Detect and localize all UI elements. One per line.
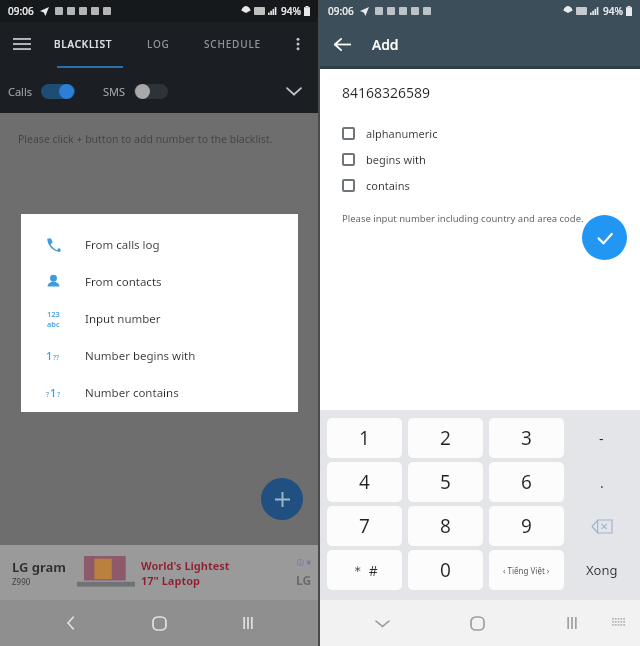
button[interactable]: Keyboard settings bbox=[604, 608, 634, 638]
button[interactable]: Recents bbox=[554, 605, 590, 641]
button[interactable]: 8 bbox=[408, 506, 483, 546]
button[interactable] bbox=[570, 506, 633, 546]
button[interactable]: 6 bbox=[489, 462, 564, 502]
staticText: alphanumeric bbox=[366, 126, 438, 141]
button[interactable]: Expand bbox=[278, 75, 310, 107]
staticText: World's Lightest bbox=[141, 558, 230, 573]
staticText: - bbox=[599, 429, 604, 448]
staticText: ‹ Tiếng Việt › bbox=[503, 565, 550, 576]
staticText: 3 bbox=[521, 425, 532, 451]
button[interactable]: 1 bbox=[21, 337, 298, 374]
staticText: Number begins with bbox=[85, 348, 196, 364]
button[interactable]: Home bbox=[459, 605, 495, 641]
button[interactable]: Recents bbox=[230, 605, 266, 641]
button[interactable]: 123 bbox=[21, 300, 298, 337]
staticText: ? bbox=[57, 390, 61, 400]
staticText: LOG bbox=[147, 37, 170, 51]
staticText: 0 bbox=[440, 557, 451, 583]
button[interactable]: 0 bbox=[408, 550, 483, 590]
button[interactable]: Hide keyboard bbox=[364, 605, 400, 641]
button[interactable]: Confirm bbox=[582, 215, 627, 260]
staticText: Xong bbox=[586, 561, 618, 579]
staticText: abc bbox=[47, 319, 60, 329]
button[interactable] bbox=[134, 84, 168, 99]
button[interactable]: 9 bbox=[489, 506, 564, 546]
button[interactable]: More options bbox=[278, 24, 318, 64]
staticText: Number contains bbox=[85, 385, 179, 401]
staticText: Z990 bbox=[12, 576, 31, 587]
button[interactable]: Home bbox=[141, 605, 177, 641]
staticText: 123 bbox=[47, 309, 60, 319]
staticText: 1 bbox=[359, 425, 370, 451]
staticText: 09:06 bbox=[8, 4, 34, 18]
button[interactable]: Add number bbox=[261, 478, 303, 520]
button[interactable]: - bbox=[570, 418, 633, 458]
staticText: Calls bbox=[8, 84, 33, 99]
button[interactable]: 1 bbox=[327, 418, 402, 458]
button[interactable]: LOG bbox=[141, 37, 176, 51]
staticText: 2 bbox=[440, 425, 451, 451]
button[interactable]: Menu bbox=[0, 22, 44, 66]
staticText: ⓘ ✕ bbox=[297, 558, 312, 568]
button[interactable]: ＊ # bbox=[327, 550, 402, 590]
staticText: 09:06 bbox=[328, 4, 354, 18]
staticText: SMS bbox=[103, 84, 126, 99]
staticText: 1 bbox=[46, 348, 53, 363]
staticText: . bbox=[600, 473, 604, 492]
staticText: 94% bbox=[603, 4, 623, 18]
button[interactable]: contains bbox=[320, 172, 640, 198]
staticText: begins with bbox=[366, 152, 426, 167]
staticText: Add bbox=[372, 35, 399, 54]
staticText: ? bbox=[46, 390, 50, 400]
button[interactable]: From contacts bbox=[21, 263, 298, 300]
staticText: LG gram bbox=[12, 558, 67, 576]
button[interactable]: Back bbox=[320, 22, 364, 66]
button[interactable]: Back bbox=[53, 605, 89, 641]
button[interactable]: 3 bbox=[489, 418, 564, 458]
button[interactable]: 2 bbox=[408, 418, 483, 458]
staticText: 17" Laptop bbox=[141, 573, 201, 588]
staticText: contains bbox=[366, 178, 410, 193]
button[interactable]: begins with bbox=[320, 146, 640, 172]
staticText: Input number bbox=[85, 311, 161, 327]
button[interactable]: Xong bbox=[570, 550, 633, 590]
staticText: LG bbox=[296, 572, 312, 588]
button[interactable] bbox=[41, 84, 75, 99]
button[interactable]: 7 bbox=[327, 506, 402, 546]
staticText: From calls log bbox=[85, 237, 160, 253]
staticText: ＊ # bbox=[351, 561, 378, 580]
staticText: 5 bbox=[440, 469, 451, 495]
staticText: From contacts bbox=[85, 274, 162, 290]
button[interactable]: 5 bbox=[408, 462, 483, 502]
staticText: BLACKLIST bbox=[54, 37, 113, 51]
button[interactable]: alphanumeric bbox=[320, 120, 640, 146]
staticText: 8 bbox=[440, 513, 451, 539]
staticText: SCHEDULE bbox=[204, 37, 261, 51]
staticText: 9 bbox=[521, 513, 532, 539]
staticText: 94% bbox=[281, 4, 301, 18]
staticText: ?? bbox=[53, 353, 60, 363]
staticText: 7 bbox=[359, 513, 370, 539]
button[interactable]: 4 bbox=[327, 462, 402, 502]
staticText: 84168326589 bbox=[342, 83, 431, 102]
button[interactable]: From calls log bbox=[21, 226, 298, 263]
button[interactable]: ? bbox=[21, 374, 298, 411]
button[interactable]: . bbox=[570, 462, 633, 502]
staticText: 6 bbox=[521, 469, 532, 495]
staticText: 1 bbox=[50, 385, 57, 400]
staticText: 4 bbox=[359, 469, 370, 495]
button[interactable]: SCHEDULE bbox=[198, 37, 267, 51]
button[interactable]: ‹ Tiếng Việt › bbox=[489, 550, 564, 590]
staticText: Please input number including country an… bbox=[342, 212, 584, 225]
button[interactable]: BLACKLIST bbox=[44, 37, 123, 51]
staticText: Please click + button to add number to t… bbox=[18, 132, 273, 146]
